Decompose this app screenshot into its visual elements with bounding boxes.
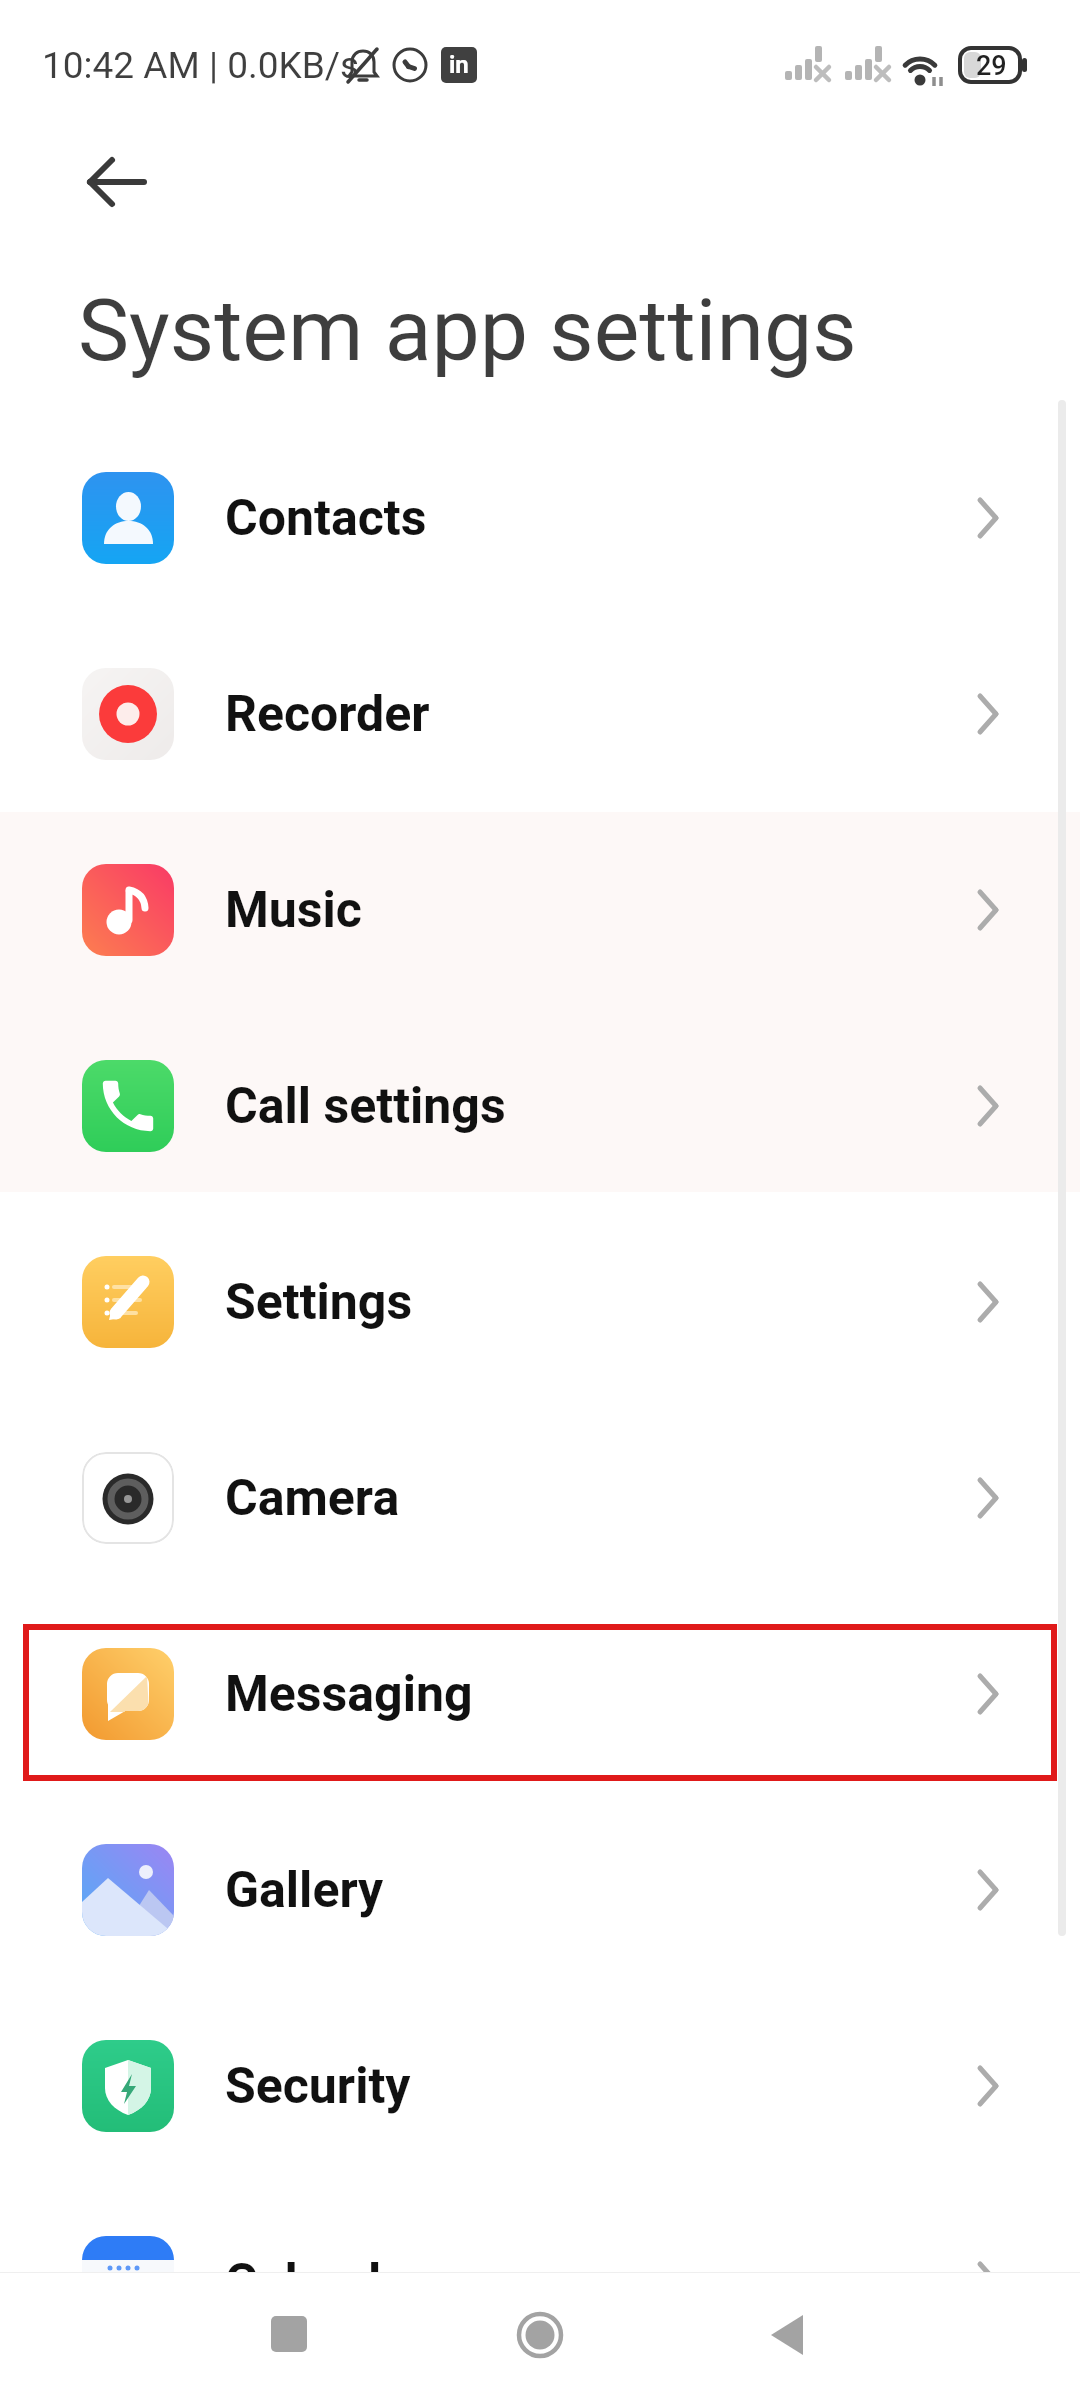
staticText: Music [225,881,362,940]
button[interactable] [769,2313,807,2357]
button[interactable]: Settings [0,1204,1080,1400]
staticText: Recorder [225,685,430,744]
staticText: Calendar [225,2253,427,2312]
button[interactable] [271,2316,307,2352]
button[interactable]: Contacts [0,420,1080,616]
staticText: 10:42 AM | 0.0KB/s [42,44,360,87]
button[interactable]: Recorder [0,616,1080,812]
staticText: in [449,51,469,79]
staticText: Settings [225,1273,413,1332]
staticText: Camera [225,1469,400,1528]
staticText: Messaging [225,1665,473,1724]
button[interactable]: Gallery [0,1792,1080,1988]
button[interactable] [516,2311,564,2359]
button[interactable]: Camera [0,1400,1080,1596]
button[interactable]: Call settings [0,1008,1080,1204]
staticText: 29 [976,50,1007,82]
button[interactable]: Music [0,812,1080,1008]
staticText: Gallery [225,1861,384,1920]
staticText: System app settings [78,280,857,381]
button[interactable]: Security [0,1988,1080,2184]
staticText: Call settings [225,1077,506,1136]
button[interactable]: Calendar [0,2184,1080,2380]
staticText: Security [225,2057,411,2116]
button[interactable] [80,152,152,212]
button[interactable]: Messaging [0,1596,1080,1792]
staticText: Contacts [225,489,427,548]
